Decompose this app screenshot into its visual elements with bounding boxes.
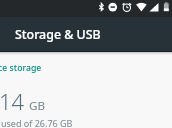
staticText: GB	[29, 98, 45, 114]
staticText: 14	[0, 86, 25, 116]
staticText: Storage & USB	[15, 26, 101, 43]
staticText: Device storage	[0, 62, 42, 74]
button[interactable]: Storage & USB	[0, 17, 172, 52]
staticText: used of 26.76 GB	[1, 117, 73, 128]
